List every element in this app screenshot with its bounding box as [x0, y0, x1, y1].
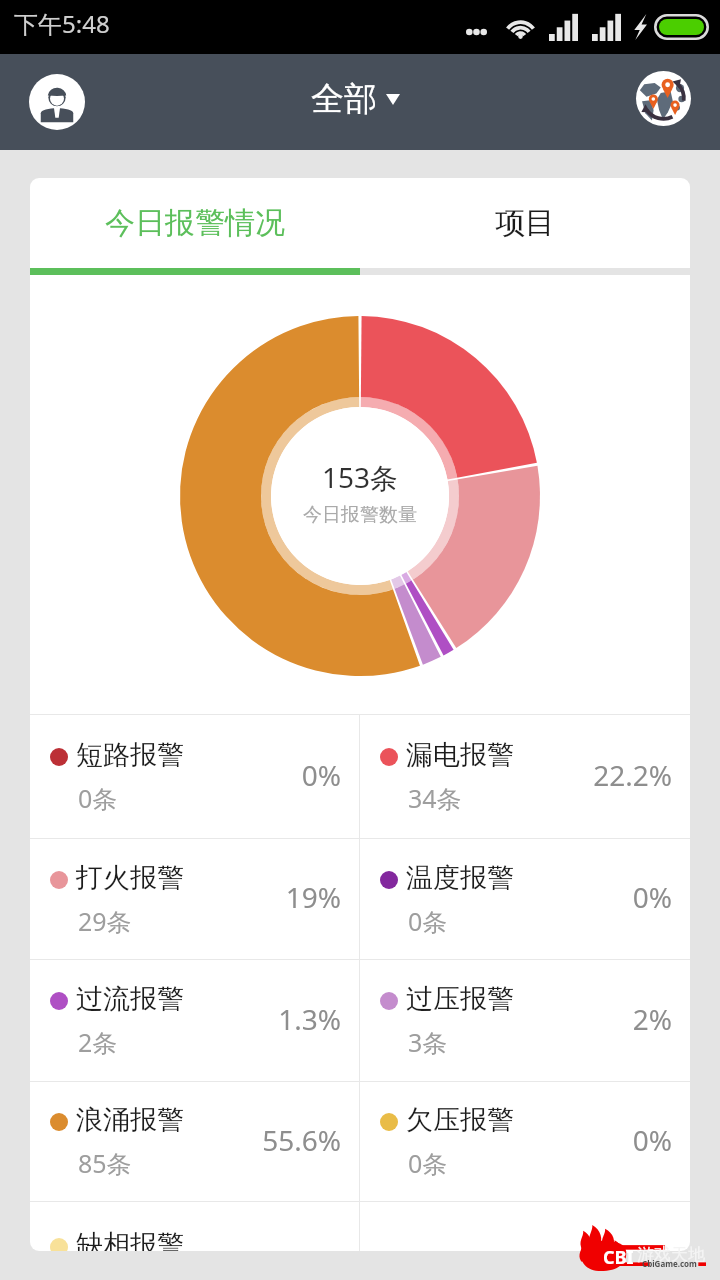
staticText: 0% [632, 1121, 672, 1159]
staticText: 0% [632, 878, 672, 916]
button[interactable]: 今日报警情况 [30, 178, 360, 268]
button[interactable]: 短路报警 [30, 715, 359, 838]
button[interactable]: 项目 [360, 178, 690, 268]
staticText: CBI [603, 1245, 634, 1270]
staticText: 19% [285, 878, 341, 916]
staticText: 2条 [78, 1025, 118, 1059]
button[interactable]: 打火报警 [30, 839, 359, 959]
button[interactable]: 浪涌报警 [30, 1082, 359, 1201]
button[interactable]: 漏电报警 [360, 715, 690, 838]
staticText: 短路报警 [76, 738, 184, 772]
staticText: 过流报警 [76, 982, 184, 1016]
staticText: 全部 [311, 78, 377, 120]
button[interactable]: 过压报警 [360, 960, 690, 1081]
button[interactable]: 全部 [311, 78, 400, 120]
staticText: 过压报警 [406, 982, 514, 1016]
staticText: 85条 [78, 1146, 132, 1180]
staticText: 下午5:48 [14, 7, 110, 40]
staticText: 项目 [495, 204, 555, 242]
staticText: 漏电报警 [406, 738, 514, 772]
staticText: 欠压报警 [406, 1103, 514, 1137]
staticText: 34条 [408, 781, 462, 815]
staticText: 153条 [322, 458, 399, 496]
staticText: 0条 [408, 904, 448, 938]
staticText: 0条 [78, 781, 118, 815]
staticText: 22.2% [593, 756, 672, 794]
staticText: 今日报警情况 [105, 204, 285, 242]
button[interactable]: 温度报警 [360, 839, 690, 959]
staticText: 缺相报警 [76, 1228, 184, 1251]
staticText: 0条 [408, 1146, 448, 1180]
button[interactable]: 过流报警 [30, 960, 359, 1081]
staticText: 2% [632, 1000, 672, 1038]
button[interactable]: 缺相报警 [30, 1202, 359, 1251]
staticText: 55.6% [262, 1121, 341, 1159]
button[interactable]: Map [636, 71, 691, 126]
staticText: 29条 [78, 904, 132, 938]
staticText: 浪涌报警 [76, 1103, 184, 1137]
button[interactable]: Profile [29, 74, 85, 130]
staticText: 3条 [408, 1025, 448, 1059]
button[interactable]: 欠压报警 [360, 1082, 690, 1201]
staticText: 打火报警 [76, 861, 184, 895]
staticText: CbiGame.com [642, 1258, 697, 1269]
staticText: 温度报警 [406, 861, 514, 895]
staticText: 游戏天地 [637, 1244, 705, 1265]
staticText: 1.3% [278, 1000, 341, 1038]
staticText: 0% [301, 756, 341, 794]
staticText: 今日报警数量 [303, 503, 417, 527]
